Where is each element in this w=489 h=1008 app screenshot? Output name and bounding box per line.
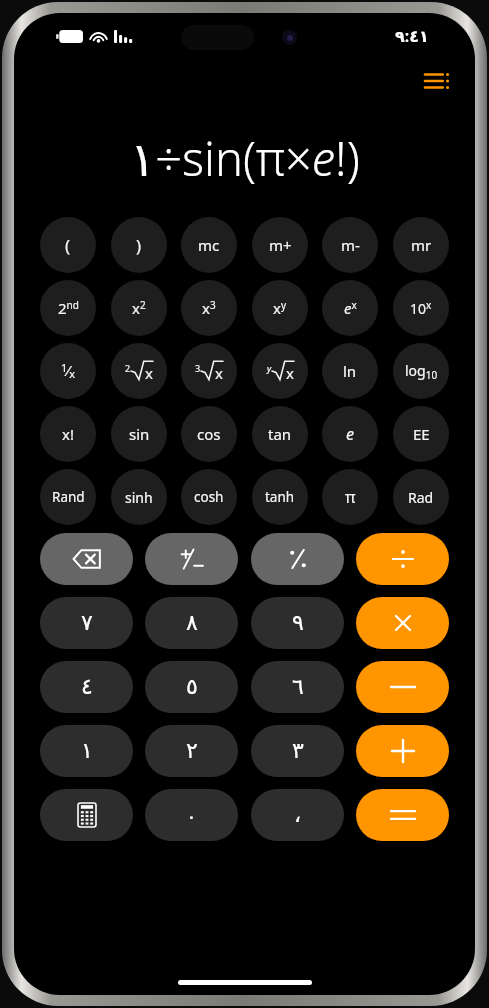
staticText: ٤ xyxy=(81,674,93,700)
button[interactable]: 3 xyxy=(181,343,237,399)
button[interactable]: π xyxy=(322,469,378,525)
button[interactable]: ٧ xyxy=(40,597,133,649)
staticText: ١ xyxy=(81,738,93,764)
button[interactable]: ln xyxy=(322,343,378,399)
staticText: x3 xyxy=(202,298,216,318)
button[interactable]: 2 xyxy=(111,343,167,399)
staticText: ٩:٤١ xyxy=(395,25,429,47)
button[interactable]: mc xyxy=(181,217,237,273)
button[interactable]: x! xyxy=(40,406,96,462)
staticText: x xyxy=(286,363,294,383)
button[interactable]: EE xyxy=(393,406,449,462)
button[interactable]: cosh xyxy=(181,469,237,525)
staticText: ٣ xyxy=(292,738,304,764)
button[interactable]: Add xyxy=(356,725,449,777)
button[interactable]: 10x xyxy=(393,280,449,336)
button[interactable]: ٥ xyxy=(145,661,238,713)
button[interactable]: ٩ xyxy=(251,597,344,649)
staticText: cos xyxy=(197,424,221,444)
staticText: ٦ xyxy=(292,674,304,700)
staticText: ٠ xyxy=(186,804,197,827)
button[interactable]: ٤ xyxy=(40,661,133,713)
button[interactable]: Subtract xyxy=(356,661,449,713)
button[interactable]: Multiply xyxy=(356,597,449,649)
button[interactable]: sinh xyxy=(111,469,167,525)
button[interactable]: ٢ xyxy=(145,725,238,777)
staticText: mr xyxy=(411,235,432,255)
button[interactable]: tanh xyxy=(252,469,308,525)
staticText: 3 xyxy=(195,362,201,374)
staticText: ( xyxy=(65,234,71,257)
staticText: log10 xyxy=(405,361,438,382)
staticText: ، xyxy=(294,802,302,828)
button[interactable]: Rad xyxy=(393,469,449,525)
button[interactable]: 1⁄x xyxy=(40,343,96,399)
button[interactable]: y xyxy=(252,343,308,399)
staticText: 2nd xyxy=(58,298,79,318)
staticText: ٥ xyxy=(186,674,198,700)
button[interactable]: xy xyxy=(252,280,308,336)
button[interactable]: mr xyxy=(393,217,449,273)
button[interactable]: ex xyxy=(322,280,378,336)
button[interactable]: Percent xyxy=(251,533,344,585)
button[interactable]: More options xyxy=(419,66,455,96)
button[interactable]: Basic calculator xyxy=(40,789,133,841)
button[interactable]: ( xyxy=(40,217,96,273)
staticText: Rand xyxy=(52,488,85,506)
staticText: ٨ xyxy=(186,610,198,636)
button[interactable]: Rand xyxy=(40,469,96,525)
staticText: m- xyxy=(341,235,360,255)
staticText: Rad xyxy=(408,488,434,507)
button[interactable]: cos xyxy=(181,406,237,462)
staticText: ٢ xyxy=(186,738,198,764)
staticText: sin xyxy=(129,424,150,444)
staticText: ٩ xyxy=(292,610,304,636)
button[interactable]: ) xyxy=(111,217,167,273)
button[interactable]: log10 xyxy=(393,343,449,399)
button[interactable]: ٣ xyxy=(251,725,344,777)
button[interactable]: m- xyxy=(322,217,378,273)
button[interactable]: Divide xyxy=(356,533,449,585)
staticText: 2 xyxy=(125,362,131,374)
staticText: ex xyxy=(344,298,357,318)
staticText: 1⁄x xyxy=(61,360,76,382)
button[interactable]: tan xyxy=(252,406,308,462)
button[interactable]: Delete xyxy=(40,533,133,585)
button[interactable]: x3 xyxy=(181,280,237,336)
button[interactable]: m+ xyxy=(252,217,308,273)
button[interactable]: ، xyxy=(251,789,344,841)
button[interactable]: ٦ xyxy=(251,661,344,713)
staticText: tanh xyxy=(265,488,295,506)
button[interactable]: 2nd xyxy=(40,280,96,336)
button[interactable]: ١ xyxy=(40,725,133,777)
staticText: 10x xyxy=(410,298,432,318)
staticText: tan xyxy=(268,424,292,444)
button[interactable]: sin xyxy=(111,406,167,462)
staticText: ٧ xyxy=(81,610,93,636)
button[interactable]: e xyxy=(322,406,378,462)
staticText: x! xyxy=(62,424,74,444)
button[interactable]: x2 xyxy=(111,280,167,336)
staticText: mc xyxy=(198,235,220,255)
button[interactable]: Equals xyxy=(356,789,449,841)
button[interactable]: Plus minus xyxy=(145,533,238,585)
staticText: π xyxy=(345,486,356,508)
staticText: x xyxy=(215,363,223,383)
staticText: ln xyxy=(343,361,357,381)
staticText: EE xyxy=(413,424,430,444)
staticText: e xyxy=(346,423,354,445)
staticText: sinh xyxy=(125,488,153,507)
staticText: x2 xyxy=(132,298,146,318)
staticText: xy xyxy=(273,298,287,318)
button[interactable]: ٠ xyxy=(145,789,238,841)
staticText: y xyxy=(267,362,272,374)
staticText: ) xyxy=(136,234,142,257)
staticText: ١÷sin(π×e!) xyxy=(130,126,360,190)
staticText: cosh xyxy=(194,488,224,506)
button[interactable]: ٨ xyxy=(145,597,238,649)
staticText: x xyxy=(145,363,153,383)
staticText: m+ xyxy=(269,235,292,255)
